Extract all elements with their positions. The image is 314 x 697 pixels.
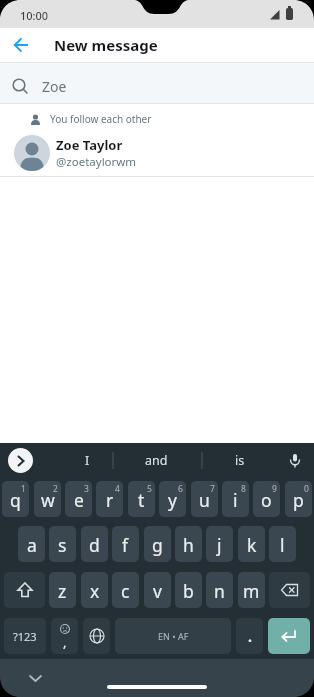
button[interactable]: s xyxy=(49,526,76,562)
staticText: I xyxy=(85,452,90,469)
button[interactable]: i xyxy=(222,481,249,517)
button[interactable] xyxy=(284,450,306,472)
button[interactable]: d xyxy=(81,526,108,562)
staticText: o xyxy=(261,488,272,512)
button[interactable]: m xyxy=(238,572,265,608)
staticText: b xyxy=(183,579,194,603)
button[interactable]: w xyxy=(34,481,61,517)
staticText: g xyxy=(152,533,163,557)
button[interactable]: and xyxy=(125,443,187,478)
button[interactable]: f xyxy=(112,526,139,562)
staticText: s xyxy=(58,533,67,557)
staticText: m xyxy=(243,579,260,603)
button[interactable]: o xyxy=(253,481,280,517)
button[interactable]: Zoe Taylor xyxy=(0,130,314,176)
button[interactable]: . xyxy=(236,618,263,654)
button[interactable]: , xyxy=(51,618,78,654)
button[interactable]: t xyxy=(128,481,155,517)
staticText: u xyxy=(199,488,210,512)
staticText: 5 xyxy=(147,483,152,495)
button[interactable]: z xyxy=(49,572,76,608)
button[interactable]: l xyxy=(269,526,296,562)
staticText: l xyxy=(280,533,285,557)
staticText: 3 xyxy=(84,483,89,495)
staticText: 10:00 xyxy=(20,8,49,23)
staticText: 8 xyxy=(241,483,246,495)
staticText: k xyxy=(247,533,257,557)
staticText: EN • AF xyxy=(158,630,189,642)
staticText: c xyxy=(121,579,130,603)
button[interactable]: is xyxy=(215,443,265,478)
staticText: w xyxy=(41,488,55,512)
staticText: You follow each other xyxy=(50,112,152,126)
button[interactable]: EN • AF xyxy=(115,618,231,654)
button[interactable] xyxy=(0,28,42,62)
staticText: q xyxy=(10,488,21,512)
staticText: , xyxy=(63,633,67,651)
button[interactable]: k xyxy=(238,526,265,562)
button[interactable]: h xyxy=(175,526,202,562)
staticText: x xyxy=(90,579,100,603)
staticText: ?123 xyxy=(13,629,37,644)
staticText: d xyxy=(89,533,100,557)
button[interactable]: v xyxy=(144,572,171,608)
staticText: New message xyxy=(54,35,158,55)
staticText: i xyxy=(233,488,238,512)
staticText: 7 xyxy=(210,483,215,495)
button[interactable]: p xyxy=(285,481,312,517)
button[interactable]: x xyxy=(81,572,108,608)
staticText: v xyxy=(153,579,162,603)
button[interactable]: n xyxy=(206,572,233,608)
staticText: y xyxy=(168,488,177,512)
button[interactable]: c xyxy=(112,572,139,608)
button[interactable]: ?123 xyxy=(4,618,46,654)
button[interactable] xyxy=(268,618,310,654)
staticText: h xyxy=(183,533,194,557)
button[interactable]: I xyxy=(62,443,112,478)
staticText: p xyxy=(293,488,304,512)
button[interactable]: g xyxy=(144,526,171,562)
staticText: 2 xyxy=(53,483,58,495)
button[interactable]: r xyxy=(96,481,123,517)
button[interactable]: y xyxy=(159,481,186,517)
button[interactable] xyxy=(8,448,33,473)
button[interactable] xyxy=(22,665,48,691)
staticText: 6 xyxy=(178,483,183,495)
button[interactable]: q xyxy=(2,481,29,517)
staticText: r xyxy=(106,488,114,512)
button[interactable] xyxy=(83,618,110,654)
button[interactable]: e xyxy=(65,481,92,517)
staticText: Zoe Taylor xyxy=(56,136,123,154)
staticText: f xyxy=(122,533,129,557)
staticText: 0 xyxy=(304,483,309,495)
button[interactable]: u xyxy=(191,481,218,517)
staticText: j xyxy=(217,533,222,557)
staticText: and xyxy=(145,452,168,469)
staticText: is xyxy=(235,452,245,469)
button[interactable]: b xyxy=(175,572,202,608)
staticText: n xyxy=(214,579,225,603)
staticText: t xyxy=(138,488,145,512)
staticText: Zoe xyxy=(42,77,67,96)
staticText: 1 xyxy=(21,483,26,495)
staticText: . xyxy=(248,627,252,646)
staticText: z xyxy=(58,579,67,603)
button[interactable] xyxy=(4,572,45,608)
button[interactable] xyxy=(269,572,310,608)
button[interactable]: j xyxy=(206,526,233,562)
button[interactable]: Zoe xyxy=(0,69,314,103)
button[interactable]: a xyxy=(18,526,45,562)
staticText: @zoetaylorwm xyxy=(56,154,137,170)
staticText: e xyxy=(74,488,84,512)
staticText: a xyxy=(27,533,37,557)
staticText: 4 xyxy=(115,483,120,495)
staticText: 9 xyxy=(272,483,277,495)
